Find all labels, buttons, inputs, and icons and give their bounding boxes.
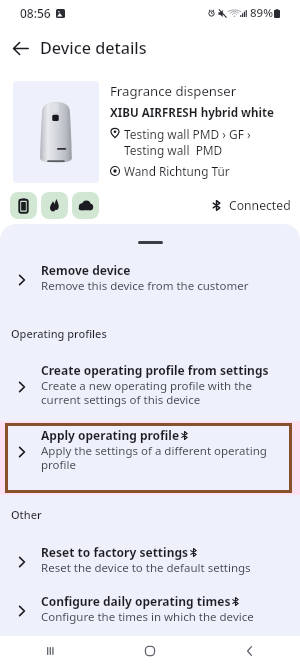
staticText: 08:56 [20,5,51,21]
staticText: Operating profiles [11,326,107,341]
staticText: Other [11,507,42,522]
button[interactable]: Reset to factory settings [0,544,300,576]
staticText: Testing wall PMD › GF › Testing wall PMD [124,126,251,158]
staticText: Reset to factory settings [41,544,189,560]
staticText: 89% [250,5,273,21]
staticText: Apply operating profile [41,427,180,443]
button[interactable]: Back [200,636,300,666]
staticText: Remove device [41,262,131,278]
staticText: Remove this device from the customer [41,278,249,294]
staticText: Create operating profile from settings [41,362,269,378]
button[interactable]: Remove device [0,262,300,294]
button[interactable]: Back [0,26,40,70]
staticText: Fragrance dispenser [110,82,237,100]
button[interactable]: Fragrance [41,192,68,219]
staticText: Apply the settings of a different operat… [41,443,267,473]
staticText: Create a new operating profile with the … [41,378,252,408]
staticText: Configure the times in which the device [41,609,254,625]
button[interactable]: Apply operating profile [5,423,292,493]
staticText: Device details [40,37,147,59]
staticText: Configure daily operating times [41,593,231,609]
staticText: XIBU AIRFRESH hybrid white [110,105,274,121]
staticText: Wand Richtung Tür [124,163,230,179]
button[interactable]: Battery [10,192,37,219]
staticText: Reset the device to the default settings [41,560,251,576]
button[interactable]: Air quality [72,192,99,219]
button[interactable]: Configure daily operating times [0,593,300,625]
staticText: Connected [229,197,291,214]
button[interactable]: Create operating profile from settings [0,362,300,408]
button[interactable]: Recent apps [0,636,100,666]
button[interactable]: Home [100,636,200,666]
